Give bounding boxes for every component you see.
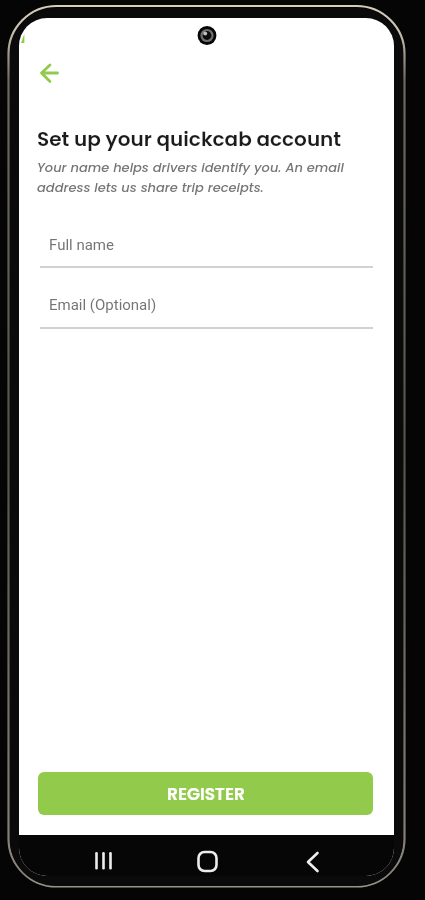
staticText: Full name xyxy=(49,236,114,254)
staticText: Your name helps drivers identify you. An… xyxy=(37,158,344,196)
staticText: Set up your quickcab account xyxy=(37,125,342,153)
staticText: REGISTER xyxy=(167,782,245,806)
staticText: Email (Optional) xyxy=(49,296,157,314)
